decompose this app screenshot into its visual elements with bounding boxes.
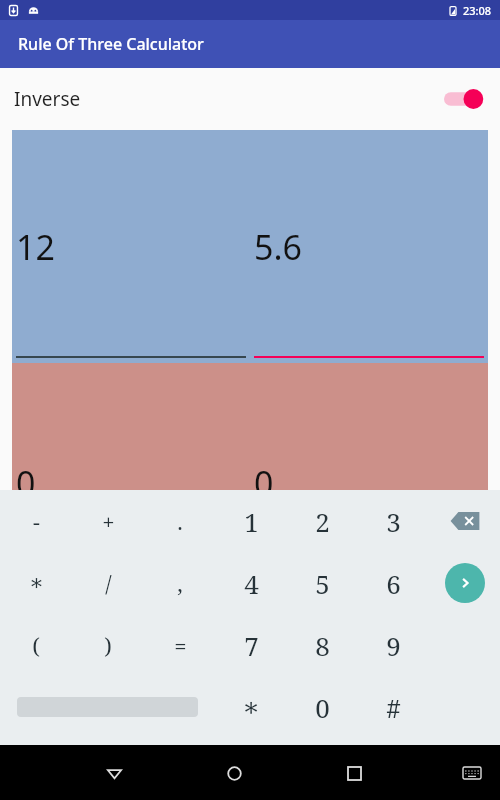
button[interactable]: = xyxy=(144,614,216,676)
staticText: ∗ xyxy=(242,692,260,722)
button[interactable]: 5.6 xyxy=(250,130,488,363)
button[interactable]: 9 xyxy=(358,614,429,676)
button[interactable]: 8 xyxy=(287,614,358,676)
button[interactable]: Inverse xyxy=(0,68,500,130)
button[interactable]: 7 xyxy=(216,614,287,676)
staticText: 6 xyxy=(386,566,401,601)
button[interactable]: Switch keyboard xyxy=(452,753,492,793)
button[interactable]: Home xyxy=(212,751,256,795)
staticText: 2 xyxy=(315,504,330,539)
button[interactable]: / xyxy=(72,552,144,614)
staticText: , xyxy=(177,568,183,598)
staticText: ∗ xyxy=(29,570,44,596)
staticText: 0 xyxy=(254,460,274,506)
button[interactable]: 6 xyxy=(358,552,429,614)
button[interactable]: 1 xyxy=(216,490,287,552)
button[interactable]: 4 xyxy=(216,552,287,614)
staticText: 4 xyxy=(244,566,259,601)
staticText: 9 xyxy=(386,628,401,663)
button[interactable]: ∗ xyxy=(0,552,72,614)
staticText: . xyxy=(177,506,183,536)
staticText: + xyxy=(102,506,115,536)
staticText: 3 xyxy=(386,504,401,539)
staticText: 0 xyxy=(315,690,330,725)
button[interactable]: ( xyxy=(0,614,72,676)
button[interactable]: Enter xyxy=(445,563,485,603)
button[interactable]: Inverse toggle xyxy=(444,86,486,112)
staticText: 7 xyxy=(244,628,259,663)
staticText: 5 xyxy=(315,566,330,601)
button[interactable]: ∗ xyxy=(215,676,287,738)
staticText: 23:08 xyxy=(463,3,492,18)
button[interactable]: ) xyxy=(72,614,144,676)
staticText: ( xyxy=(32,630,40,660)
button[interactable]: 0 xyxy=(12,363,250,490)
staticText: 12 xyxy=(16,224,55,270)
staticText: 1 xyxy=(244,504,259,539)
staticText: 0 xyxy=(16,460,36,506)
button[interactable]: Back xyxy=(92,751,136,795)
button[interactable]: Space xyxy=(0,676,215,738)
button[interactable]: 5 xyxy=(287,552,358,614)
staticText: 8 xyxy=(315,628,330,663)
staticText: - xyxy=(33,506,40,536)
staticText: ) xyxy=(104,630,112,660)
staticText: / xyxy=(105,568,112,598)
button[interactable]: - xyxy=(0,490,72,552)
button[interactable]: Recents xyxy=(332,751,376,795)
button[interactable]: . xyxy=(144,490,216,552)
staticText: Inverse xyxy=(14,86,81,112)
button[interactable]: 2 xyxy=(287,490,358,552)
staticText: 5.6 xyxy=(254,224,303,270)
staticText: Rule Of Three Calculator xyxy=(18,33,204,55)
button[interactable]: # xyxy=(358,676,429,738)
button[interactable]: 0 xyxy=(287,676,358,738)
button[interactable]: 3 xyxy=(358,490,429,552)
button[interactable]: + xyxy=(72,490,144,552)
staticText: = xyxy=(174,630,187,660)
button[interactable]: 12 xyxy=(12,130,250,363)
button[interactable]: , xyxy=(144,552,216,614)
staticText: # xyxy=(386,690,401,725)
button[interactable]: Backspace xyxy=(447,503,483,539)
button[interactable]: 0 xyxy=(250,363,488,490)
